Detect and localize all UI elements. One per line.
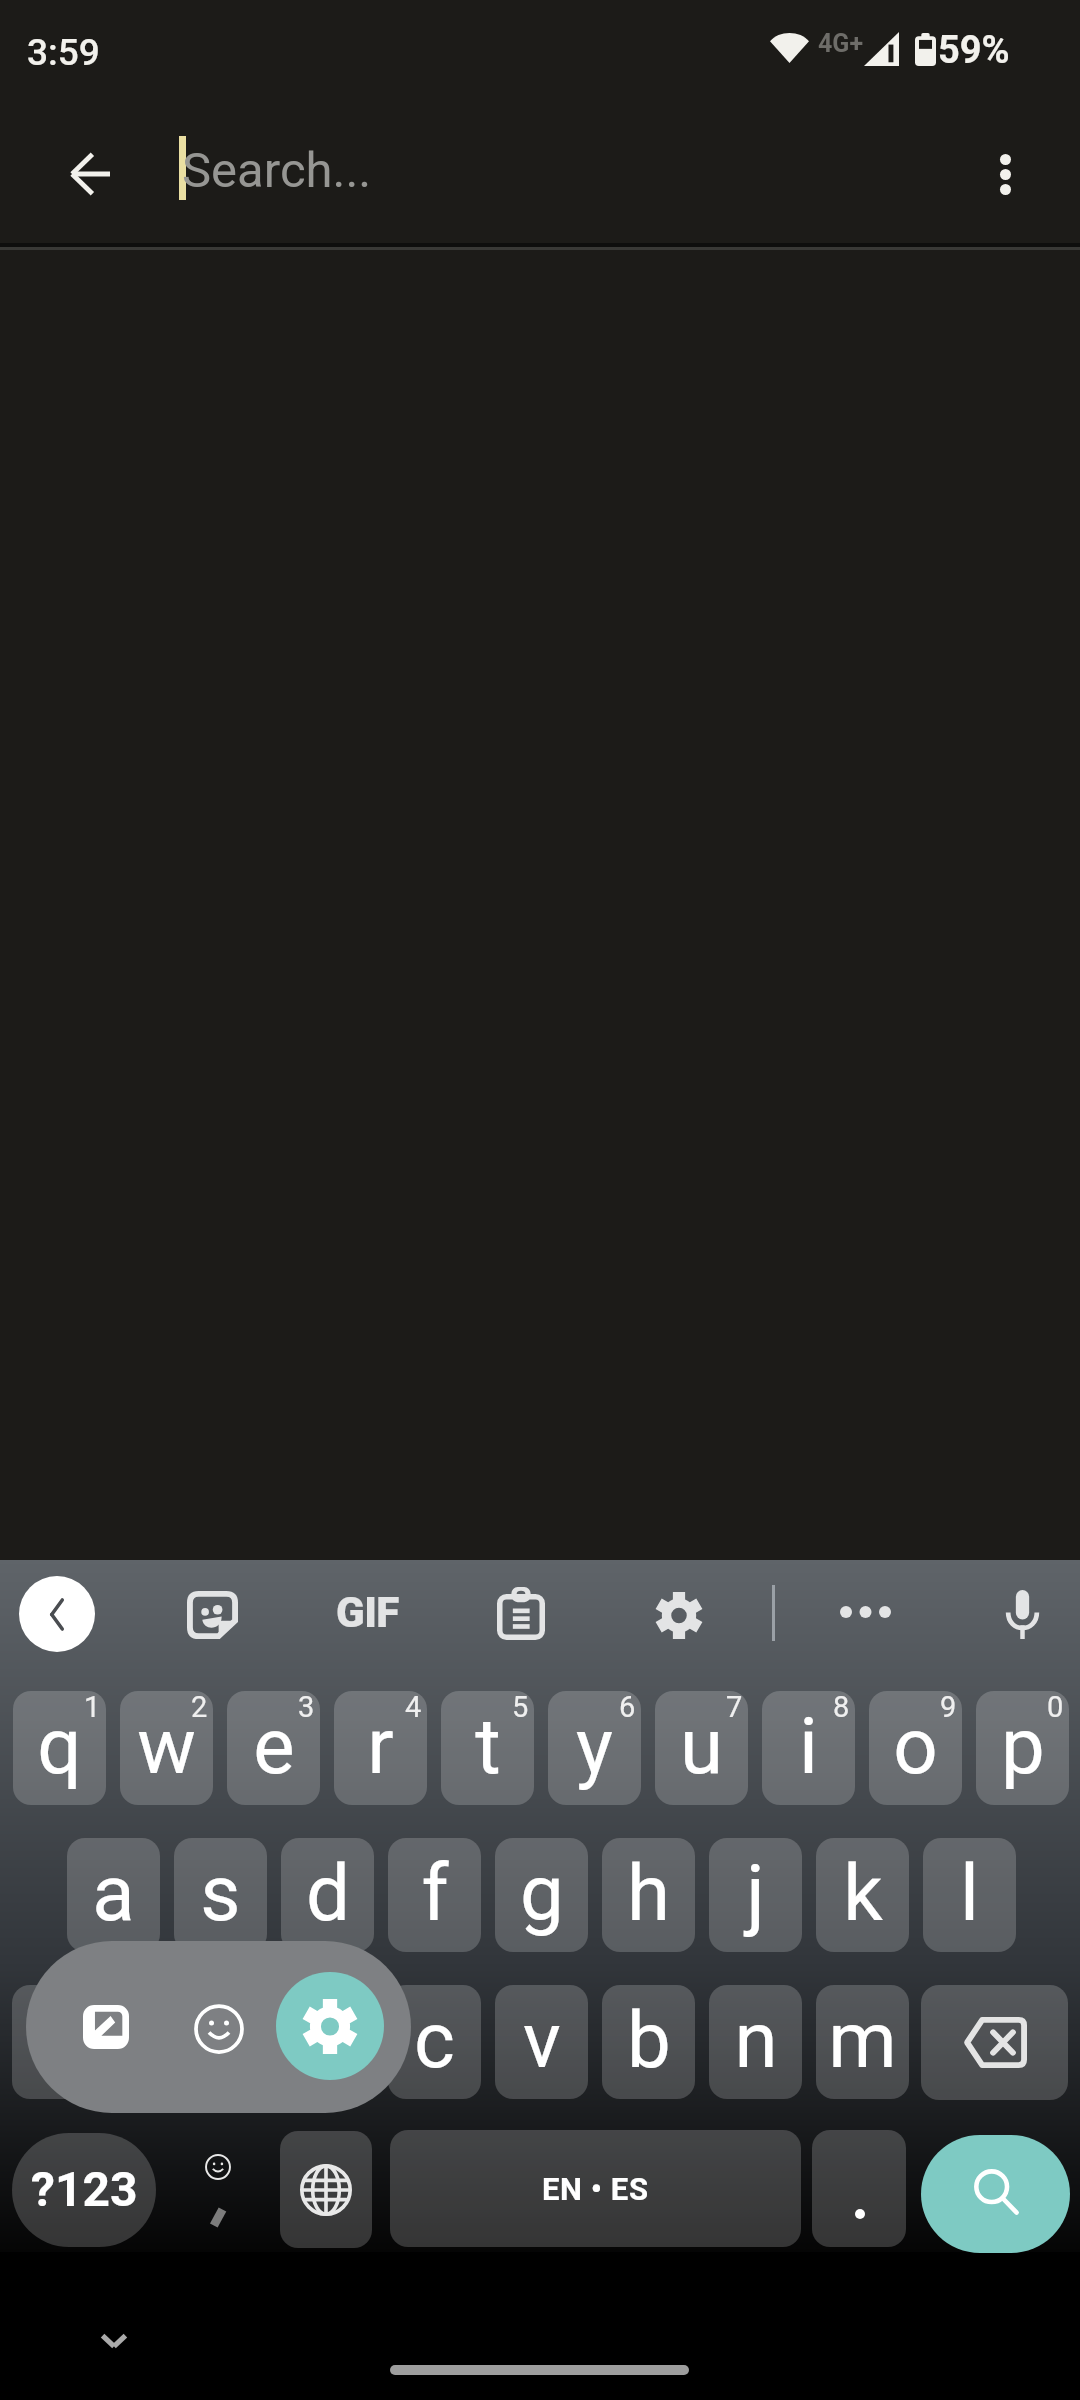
staticText: 3:59: [27, 31, 100, 74]
button[interactable]: v: [495, 1985, 588, 2099]
button[interactable]: Backspace: [921, 1985, 1068, 2100]
button[interactable]: Clipboard: [473, 1565, 569, 1661]
staticText: v: [523, 1995, 561, 2086]
staticText: z: [201, 1995, 240, 2086]
staticText: 8: [833, 1691, 850, 1724]
staticText: 9: [940, 1691, 957, 1724]
staticText: y: [576, 1701, 613, 1792]
button[interactable]: b: [602, 1985, 695, 2099]
staticText: 2: [191, 1691, 208, 1724]
button[interactable]: u: [655, 1691, 748, 1805]
staticText: l: [960, 1848, 979, 1939]
staticText: t: [475, 1701, 501, 1792]
staticText: s: [200, 1848, 241, 1939]
staticText: 5: [512, 1691, 529, 1724]
button[interactable]: o: [869, 1691, 962, 1805]
button[interactable]: Stickers: [164, 1567, 260, 1663]
button[interactable]: r: [334, 1691, 427, 1805]
button[interactable]: Resize keyboard: [64, 1985, 148, 2069]
button[interactable]: Emoji: [176, 1986, 261, 2071]
button[interactable]: More: [817, 1564, 913, 1660]
staticText: n: [734, 1995, 778, 2086]
staticText: f: [421, 1848, 449, 1939]
staticText: EN • ES: [542, 2171, 649, 2207]
button[interactable]: c: [388, 1985, 481, 2099]
button[interactable]: x: [281, 1985, 374, 2099]
button[interactable]: a: [67, 1838, 160, 1952]
button[interactable]: i: [762, 1691, 855, 1805]
staticText: j: [746, 1848, 765, 1939]
button[interactable]: e: [227, 1691, 320, 1805]
button[interactable]: l: [923, 1838, 1016, 1952]
button[interactable]: w: [120, 1691, 213, 1805]
staticText: o: [893, 1701, 938, 1792]
staticText: GIF: [336, 1588, 399, 1637]
staticText: c: [414, 1995, 455, 2086]
staticText: h: [627, 1848, 670, 1939]
button[interactable]: k: [816, 1838, 909, 1952]
button[interactable]: y: [548, 1691, 641, 1805]
staticText: 0: [1047, 1691, 1064, 1724]
staticText: e: [253, 1701, 295, 1792]
button[interactable]: Search...: [160, 114, 940, 226]
button[interactable]: h: [602, 1838, 695, 1952]
button[interactable]: Search: [921, 2135, 1070, 2253]
button[interactable]: t: [441, 1691, 534, 1805]
button[interactable]: Emoji: [165, 2133, 273, 2247]
staticText: 7: [726, 1691, 743, 1724]
button[interactable]: Back: [19, 1576, 95, 1652]
button[interactable]: Symbols: [12, 2133, 156, 2247]
staticText: m: [828, 1995, 897, 2086]
button[interactable]: g: [495, 1838, 588, 1952]
staticText: k: [843, 1848, 883, 1939]
button[interactable]: Change language: [280, 2131, 372, 2248]
staticText: 6: [619, 1691, 636, 1724]
button[interactable]: Hide keyboard: [77, 2304, 150, 2377]
button[interactable]: Shift: [12, 1985, 158, 2099]
button[interactable]: GIF: [320, 1580, 414, 1646]
button[interactable]: j: [709, 1838, 802, 1952]
button[interactable]: Voice input: [974, 1566, 1070, 1662]
staticText: 4: [405, 1691, 422, 1724]
button[interactable]: z: [174, 1985, 267, 2099]
staticText: a: [92, 1848, 135, 1939]
button[interactable]: d: [281, 1838, 374, 1952]
staticText: p: [1001, 1701, 1045, 1792]
staticText: d: [306, 1848, 350, 1939]
button[interactable]: f: [388, 1838, 481, 1952]
staticText: w: [137, 1701, 196, 1792]
button[interactable]: More options: [957, 126, 1053, 222]
staticText: r: [367, 1701, 394, 1792]
staticText: ?123: [31, 2161, 138, 2217]
staticText: g: [520, 1848, 564, 1939]
staticText: 1: [84, 1691, 101, 1724]
staticText: Search...: [182, 142, 372, 199]
staticText: 59%: [938, 28, 1010, 73]
button[interactable]: m: [816, 1985, 909, 2099]
button[interactable]: q: [13, 1691, 106, 1805]
button[interactable]: n: [709, 1985, 802, 2099]
staticText: u: [680, 1701, 723, 1792]
staticText: 4G+: [818, 29, 864, 58]
button[interactable]: Keyboard settings: [631, 1567, 727, 1663]
staticText: b: [627, 1995, 671, 2086]
button[interactable]: p: [976, 1691, 1069, 1805]
staticText: x: [308, 1995, 347, 2086]
staticText: 3: [298, 1691, 315, 1724]
button[interactable]: s: [174, 1838, 267, 1952]
button[interactable]: Back: [42, 126, 138, 222]
button[interactable]: Period: [812, 2130, 906, 2247]
button[interactable]: Space: [390, 2130, 801, 2247]
button[interactable]: Keyboard settings: [276, 1972, 384, 2080]
staticText: q: [37, 1701, 82, 1792]
staticText: i: [799, 1701, 818, 1792]
